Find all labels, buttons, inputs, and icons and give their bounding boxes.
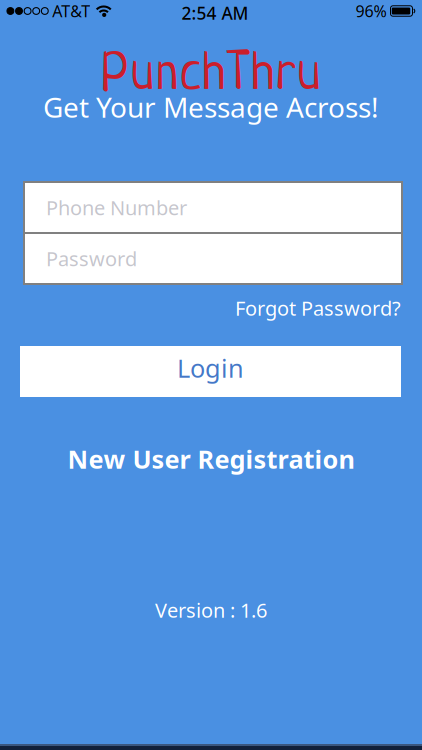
staticText: Login	[177, 351, 244, 385]
staticText: AT&T	[52, 0, 90, 22]
button[interactable]: New User Registration	[67, 442, 354, 476]
button[interactable]: Login	[20, 346, 401, 397]
staticText: Password	[46, 245, 137, 272]
staticText: Get Your Message Across!	[43, 88, 379, 126]
staticText: 96%	[355, 0, 386, 22]
button[interactable]: Forgot Password?	[235, 295, 401, 321]
button[interactable]: Password	[24, 233, 402, 284]
staticText: Forgot Password?	[235, 295, 401, 321]
staticText: Version : 1.6	[155, 597, 267, 623]
staticText: Phone Number	[46, 194, 187, 221]
staticText: 2:54 AM	[181, 1, 248, 24]
staticText: New User Registration	[67, 442, 354, 476]
button[interactable]: Phone Number	[24, 182, 402, 233]
staticText: PunchThru	[101, 47, 321, 104]
